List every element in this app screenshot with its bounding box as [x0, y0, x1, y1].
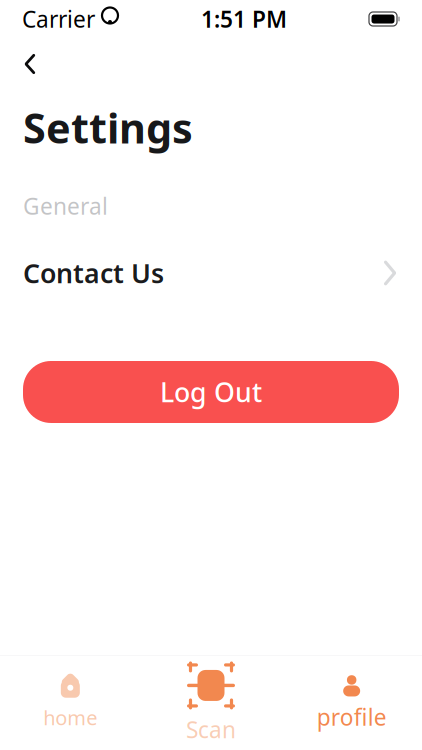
staticText: Log Out: [160, 374, 262, 410]
button[interactable]: Contact Us: [0, 249, 422, 297]
staticText: profile: [317, 702, 387, 732]
staticText: Carrier: [22, 4, 95, 34]
staticText: General: [23, 191, 108, 221]
staticText: Settings: [23, 100, 193, 155]
staticText: 1:51 PM: [201, 4, 287, 34]
button[interactable]: Scan: [141, 656, 281, 750]
staticText: home: [43, 704, 97, 731]
button[interactable]: profile: [281, 656, 422, 750]
button[interactable]: Log Out: [23, 361, 399, 423]
staticText: Contact Us: [23, 255, 164, 291]
button[interactable]: Back: [8, 44, 52, 84]
staticText: Scan: [186, 714, 236, 744]
button[interactable]: home: [0, 656, 141, 750]
